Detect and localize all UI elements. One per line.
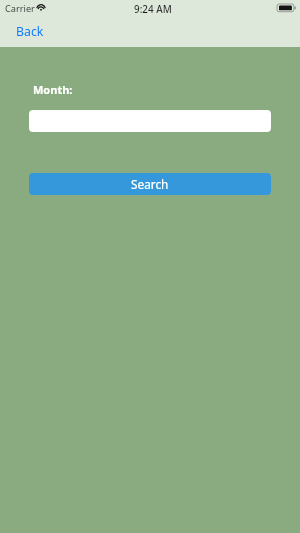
- staticText: Month:: [33, 82, 73, 97]
- button[interactable]: Back: [6, 20, 54, 43]
- button[interactable]: Search: [29, 173, 271, 195]
- staticText: Carrier: [5, 2, 35, 15]
- button[interactable]: Month text field: [29, 110, 271, 132]
- staticText: Search: [131, 176, 169, 192]
- staticText: Back: [16, 23, 44, 40]
- staticText: 9:24 AM: [134, 2, 172, 15]
- other: Battery full: [277, 4, 296, 12]
- other: Wi-Fi signal: [36, 4, 46, 11]
